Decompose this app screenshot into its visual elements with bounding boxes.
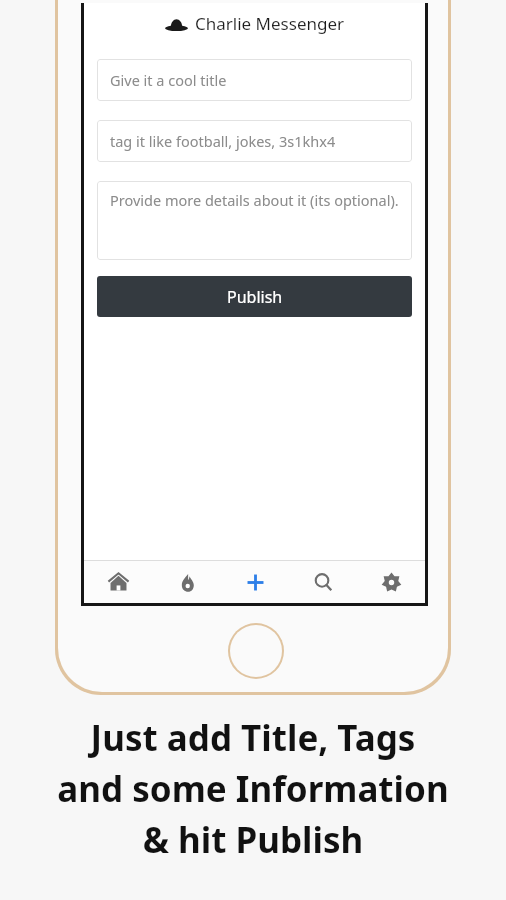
staticText: Publish <box>227 286 283 308</box>
button[interactable]: Settings <box>357 561 425 603</box>
button[interactable]: Add post <box>221 561 289 603</box>
button[interactable]: Search <box>289 561 357 603</box>
button[interactable]: tag it like football, jokes, 3s1khx4 <box>97 120 412 162</box>
button[interactable]: Home button <box>230 625 282 677</box>
staticText: Just add Title, Tags and some Informatio… <box>57 714 449 863</box>
staticText: Charlie Messenger <box>195 12 345 35</box>
button[interactable]: Publish <box>97 276 412 317</box>
staticText: tag it like football, jokes, 3s1khx4 <box>110 131 336 151</box>
staticText: Give it a cool title <box>110 70 227 90</box>
button[interactable]: Give it a cool title <box>97 59 412 101</box>
button[interactable]: Provide more details about it (its optio… <box>97 181 412 260</box>
staticText: Provide more details about it (its optio… <box>110 190 399 210</box>
button[interactable]: Trending <box>153 561 221 603</box>
button[interactable]: Home <box>84 561 153 603</box>
